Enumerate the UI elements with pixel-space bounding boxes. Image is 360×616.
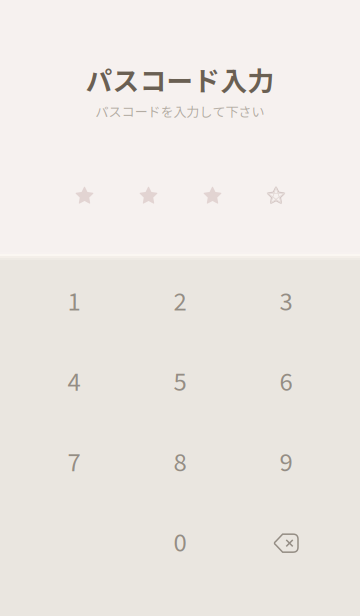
staticText: 9 [279, 444, 292, 482]
staticText: 1 [67, 283, 80, 321]
button[interactable]: 0 [127, 503, 233, 583]
button[interactable]: 5 [127, 342, 233, 423]
staticText: パスコードを入力して下さい [95, 102, 264, 120]
staticText: 3 [279, 283, 292, 321]
button[interactable]: 4 [21, 342, 127, 423]
staticText: 7 [67, 444, 80, 482]
button[interactable]: 1 [21, 262, 127, 342]
button[interactable]: 7 [21, 423, 127, 503]
button[interactable]: 9 [233, 423, 339, 503]
button[interactable]: 3 [233, 262, 339, 342]
button[interactable]: Delete [233, 503, 339, 583]
button[interactable]: 6 [233, 342, 339, 423]
staticText: 2 [173, 283, 186, 321]
staticText: 5 [173, 363, 186, 401]
staticText: パスコード入力 [85, 60, 274, 99]
staticText: 6 [279, 363, 292, 401]
staticText: 8 [173, 444, 186, 482]
button[interactable]: 2 [127, 262, 233, 342]
button[interactable]: 8 [127, 423, 233, 503]
staticText: 0 [173, 524, 186, 562]
staticText: 4 [67, 363, 80, 401]
